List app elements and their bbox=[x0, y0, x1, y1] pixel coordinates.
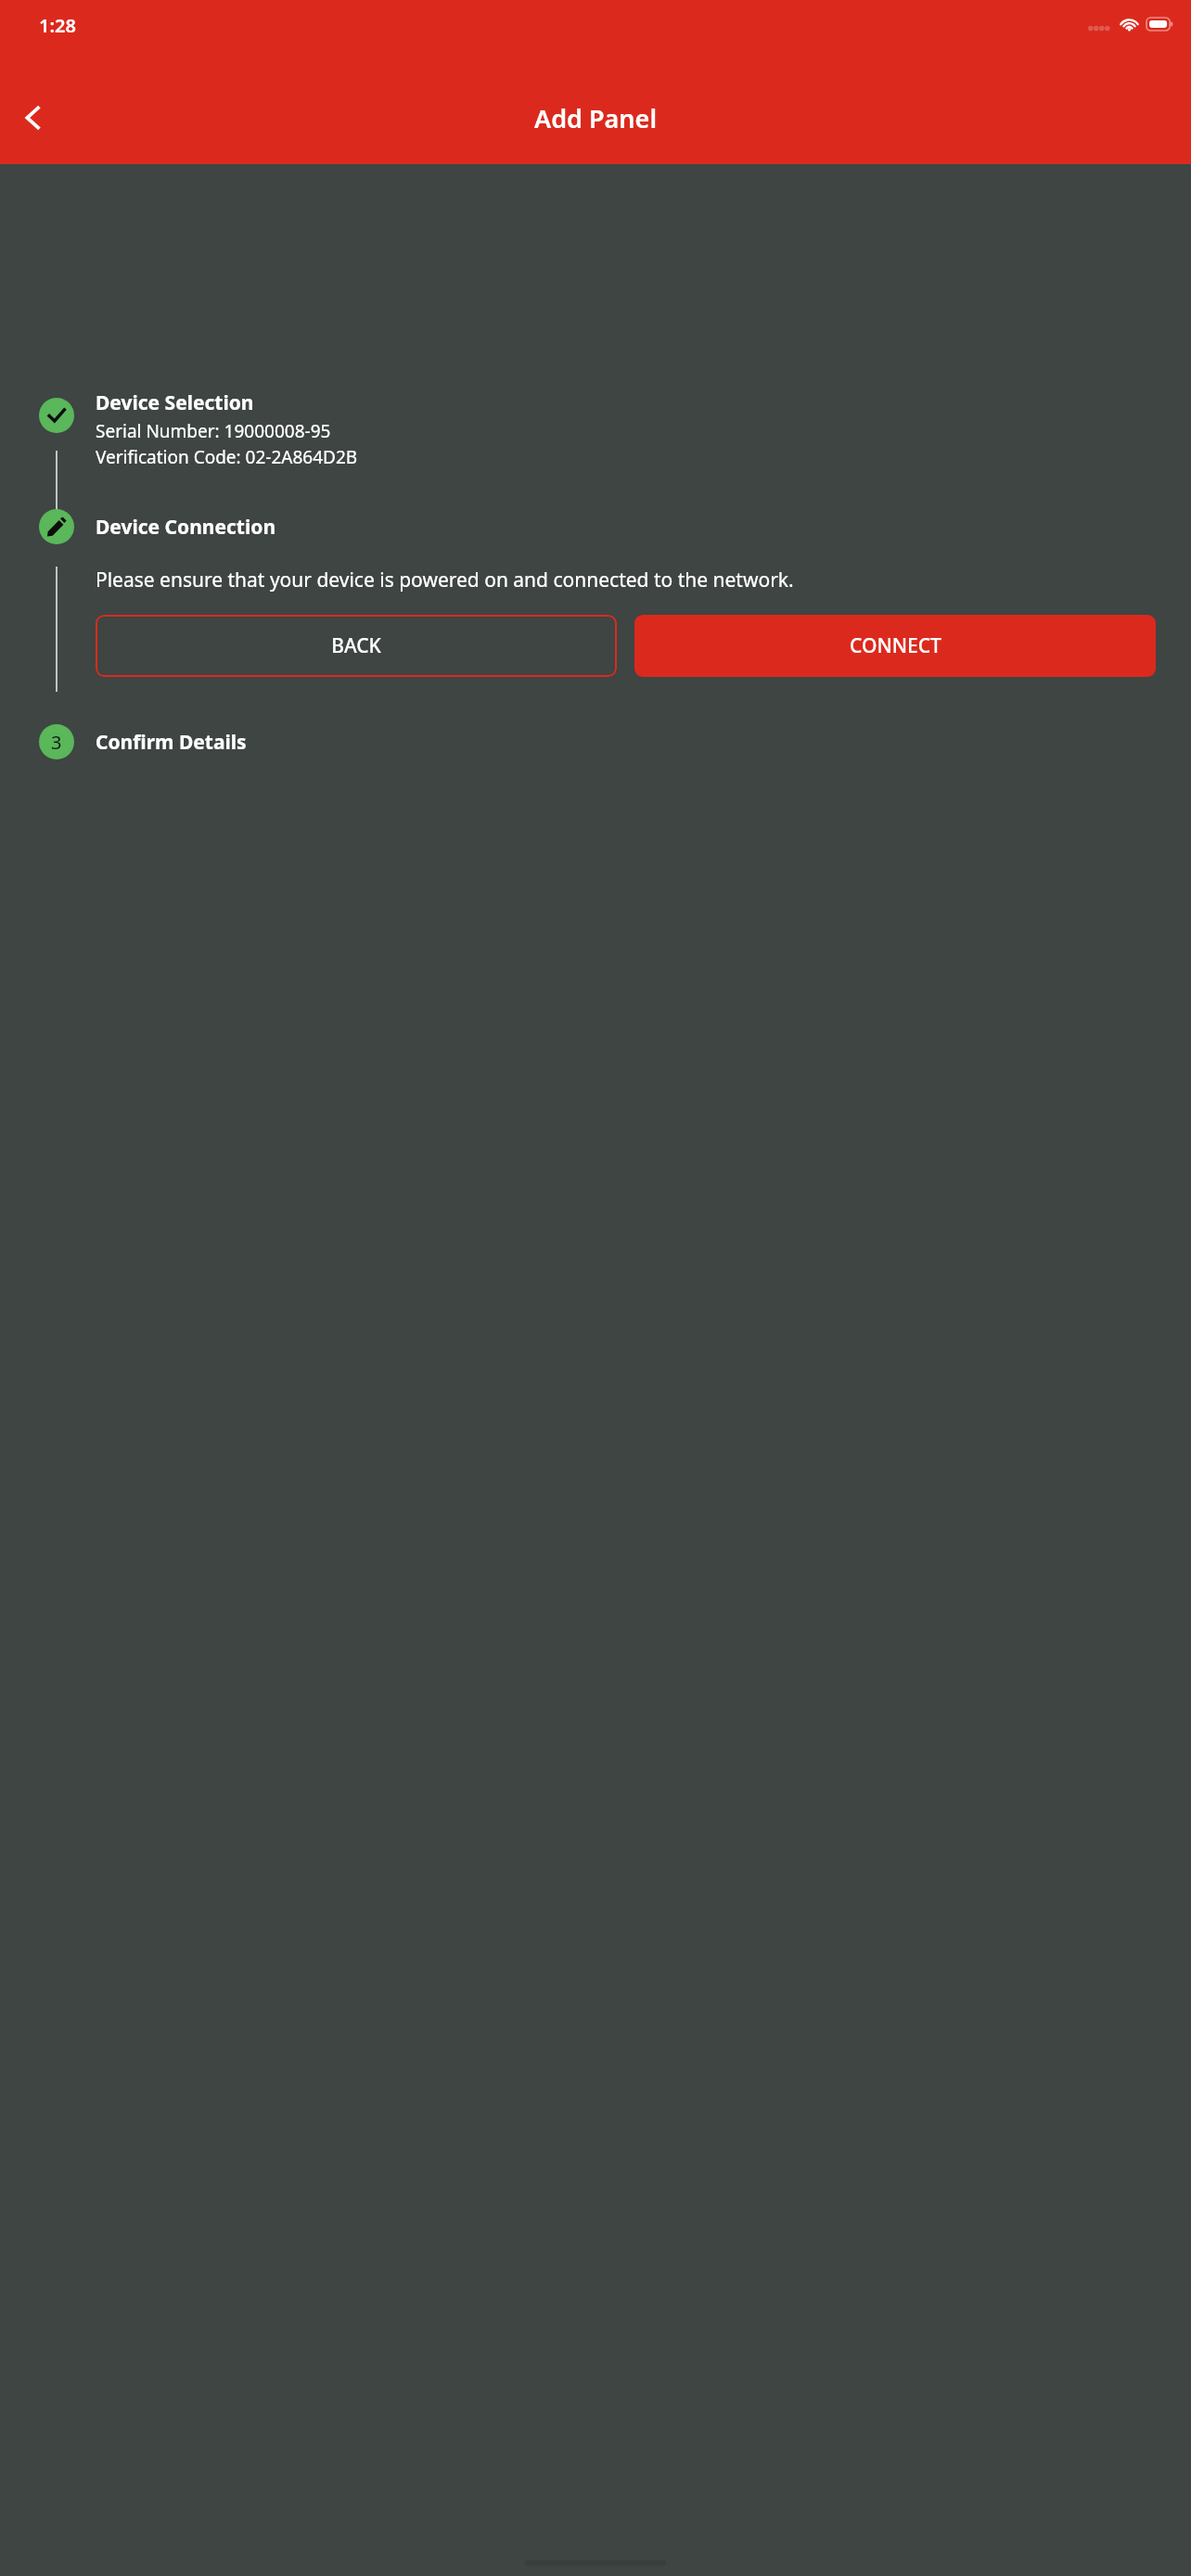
staticText: 3 bbox=[51, 730, 62, 755]
button[interactable]: CONNECT bbox=[634, 615, 1156, 677]
staticText: Serial Number: 19000008-95 bbox=[96, 419, 331, 443]
staticText: Device Selection bbox=[96, 389, 254, 416]
staticText: Please ensure that your device is powere… bbox=[96, 567, 794, 593]
button[interactable]: Back bbox=[7, 92, 59, 144]
staticText: BACK bbox=[331, 632, 381, 659]
staticText: Device Connection bbox=[96, 514, 276, 541]
staticText: CONNECT bbox=[850, 632, 941, 659]
button[interactable]: BACK bbox=[96, 615, 617, 677]
staticText: Add Panel bbox=[534, 101, 658, 135]
staticText: Confirm Details bbox=[96, 729, 247, 756]
staticText: Verification Code: 02-2A864D2B bbox=[96, 445, 358, 469]
staticText: 1:28 bbox=[39, 13, 76, 38]
